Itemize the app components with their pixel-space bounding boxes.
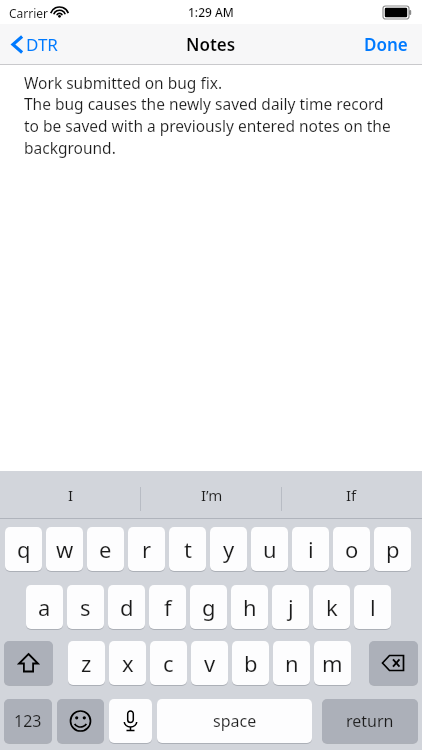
staticText: g — [202, 592, 216, 622]
button[interactable]: s — [67, 585, 104, 629]
staticText: u — [263, 534, 277, 564]
button[interactable]: If — [281, 471, 422, 519]
staticText: I’m — [201, 485, 223, 505]
button[interactable]: j — [272, 585, 309, 629]
button[interactable]: DTR — [6, 24, 61, 64]
staticText: h — [243, 592, 257, 622]
staticText: y — [223, 534, 235, 564]
staticText: 123 — [14, 710, 42, 732]
staticText: Done — [364, 33, 408, 56]
button[interactable]: a — [26, 585, 63, 629]
button[interactable]: t — [169, 527, 206, 571]
staticText: f — [164, 592, 172, 622]
staticText: t — [184, 534, 192, 564]
button[interactable]: return — [322, 699, 418, 743]
staticText: If — [346, 485, 357, 505]
staticText: r — [142, 534, 152, 564]
button[interactable]: 123 — [4, 699, 52, 743]
button[interactable]: Done — [350, 24, 422, 64]
button[interactable]: q — [5, 527, 42, 571]
button[interactable]: I’m — [141, 471, 282, 519]
staticText: j — [288, 592, 294, 622]
staticText: e — [99, 534, 112, 564]
staticText: l — [370, 592, 376, 622]
button[interactable]: e — [87, 527, 124, 571]
staticText: Notes — [186, 33, 236, 56]
staticText: m — [322, 648, 343, 678]
staticText: k — [326, 592, 338, 622]
button[interactable]: h — [231, 585, 268, 629]
button[interactable]: I — [0, 471, 141, 519]
button[interactable]: u — [251, 527, 288, 571]
staticText: x — [122, 648, 134, 678]
staticText: i — [308, 534, 314, 564]
button[interactable]: l — [354, 585, 391, 629]
staticText: v — [204, 648, 216, 678]
button[interactable]: y — [210, 527, 247, 571]
staticText: b — [244, 648, 258, 678]
button[interactable]: i — [292, 527, 329, 571]
button[interactable]: space — [157, 699, 312, 743]
staticText: return — [346, 710, 394, 732]
button[interactable]: m — [314, 641, 351, 685]
button[interactable]: o — [333, 527, 370, 571]
staticText: Carrier — [9, 5, 49, 21]
staticText: o — [345, 534, 359, 564]
button[interactable]: d — [108, 585, 145, 629]
staticText: Work submitted on bug fix. The bug cause… — [24, 72, 402, 158]
staticText: n — [285, 648, 299, 678]
staticText: c — [163, 648, 174, 678]
button[interactable]: v — [191, 641, 228, 685]
staticText: q — [17, 534, 31, 564]
staticText: w — [56, 534, 74, 564]
staticText: a — [38, 592, 51, 622]
button[interactable]: r — [128, 527, 165, 571]
button[interactable]: p — [374, 527, 411, 571]
button[interactable]: z — [68, 641, 105, 685]
button[interactable]: Emoji — [57, 699, 104, 743]
button[interactable]: n — [273, 641, 310, 685]
staticText: DTR — [26, 33, 58, 56]
staticText: p — [386, 534, 400, 564]
staticText: I — [68, 485, 74, 505]
button[interactable]: w — [46, 527, 83, 571]
button[interactable]: c — [150, 641, 187, 685]
staticText: z — [81, 648, 92, 678]
button[interactable]: g — [190, 585, 227, 629]
staticText: d — [120, 592, 134, 622]
staticText: space — [213, 710, 257, 732]
button[interactable]: Backspace — [369, 641, 418, 685]
button[interactable]: Dictate — [109, 699, 152, 743]
button[interactable]: b — [232, 641, 269, 685]
staticText: 1:29 AM — [188, 4, 234, 20]
button[interactable]: f — [149, 585, 186, 629]
button[interactable]: k — [313, 585, 350, 629]
button[interactable]: Shift — [4, 641, 53, 685]
button[interactable]: x — [109, 641, 146, 685]
staticText: s — [80, 592, 91, 622]
